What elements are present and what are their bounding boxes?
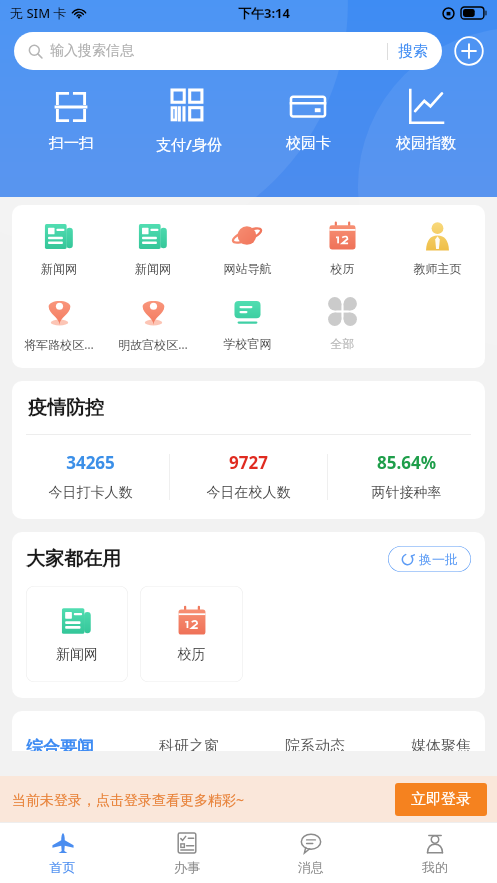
staticText: 换一批: [419, 551, 458, 567]
button[interactable]: 新闻网: [106, 219, 200, 278]
staticText: 今日打卡人数: [12, 484, 169, 502]
staticText: 立即登录: [411, 790, 471, 809]
staticText: 今日在校人数: [170, 484, 327, 502]
button[interactable]: 学校官网: [200, 294, 295, 353]
button[interactable]: 首页: [0, 823, 125, 883]
staticText: 综合要闻: [26, 737, 94, 751]
staticText: 消息: [249, 859, 373, 875]
staticText: 全部: [296, 336, 389, 351]
staticText: 新闻网: [13, 261, 105, 276]
staticText: 明故宫校区…: [107, 336, 199, 352]
staticText: 支付/身份: [156, 134, 222, 154]
staticText: 9727: [170, 451, 327, 474]
button[interactable]: 新闻网: [26, 586, 128, 682]
staticText: 34265: [12, 451, 169, 474]
button[interactable]: 办事: [125, 823, 249, 883]
staticText: 输入搜索信息: [50, 42, 134, 60]
button[interactable]: 将军路校区…: [12, 294, 106, 354]
button[interactable]: 立即登录: [395, 783, 487, 816]
staticText: 疫情防控: [28, 396, 104, 420]
staticText: 将军路校区…: [13, 336, 105, 352]
staticText: 校历: [296, 261, 389, 276]
staticText: 下午3:14: [238, 4, 290, 22]
button[interactable]: 校历: [295, 219, 390, 278]
staticText: 科研之窗: [159, 737, 219, 751]
button[interactable]: 我的: [373, 823, 497, 883]
button[interactable]: 疫情防控: [12, 381, 485, 519]
staticText: 校园卡: [286, 134, 331, 153]
staticText: 教师主页: [391, 261, 484, 276]
button[interactable]: 校历: [140, 586, 243, 682]
button[interactable]: 校园卡: [260, 88, 356, 155]
staticText: 大家都在用: [26, 547, 121, 571]
staticText: 院系动态: [285, 737, 345, 751]
button[interactable]: 教师主页: [390, 219, 485, 278]
staticText: 无 SIM 卡: [10, 4, 67, 22]
button[interactable]: 校园指数: [378, 88, 474, 155]
button[interactable]: 消息: [249, 823, 373, 883]
staticText: 校历: [140, 646, 243, 664]
button[interactable]: 支付/身份: [141, 88, 237, 156]
button[interactable]: 换一批: [388, 546, 471, 572]
staticText: 新闻网: [107, 261, 199, 276]
button[interactable]: 全部: [295, 294, 390, 353]
button[interactable]: 输入搜索信息: [14, 32, 442, 70]
button[interactable]: 新闻网: [12, 219, 106, 278]
staticText: 办事: [125, 859, 249, 875]
staticText: 网站导航: [201, 261, 294, 276]
staticText: 首页: [0, 859, 125, 875]
staticText: 学校官网: [201, 336, 294, 351]
staticText: 新闻网: [26, 646, 128, 664]
staticText: 媒体聚焦: [411, 737, 471, 751]
button[interactable]: 网站导航: [200, 219, 295, 278]
button[interactable]: 扫一扫: [23, 88, 119, 155]
button[interactable]: 明故宫校区…: [106, 294, 200, 354]
button[interactable]: 综合要闻: [12, 711, 485, 751]
button[interactable]: Add: [453, 35, 485, 67]
staticText: 校园指数: [396, 134, 456, 153]
staticText: 我的: [373, 859, 497, 875]
staticText: 扫一扫: [49, 134, 94, 153]
staticText: 当前未登录，点击登录查看更多精彩~: [12, 790, 245, 809]
staticText: 85.64%: [328, 451, 485, 474]
staticText: 搜索: [398, 42, 428, 61]
staticText: 两针接种率: [328, 484, 485, 502]
